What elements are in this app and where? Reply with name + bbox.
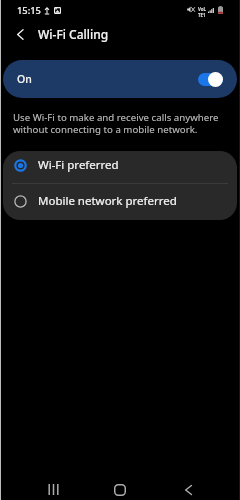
staticText: VoL [198,6,206,12]
button[interactable]: Home [105,479,135,500]
button[interactable]: Mobile network preferred [3,184,237,220]
button[interactable]: On [3,60,237,98]
button[interactable]: Wi-Fi preferred [3,151,237,183]
staticText: 15:15 [17,4,41,17]
staticText: On [17,72,32,86]
staticText: Wi-Fi Calling [38,26,109,42]
staticText: Use Wi-Fi to make and receive calls anyw… [13,111,219,136]
button[interactable]: Back [173,479,203,500]
button[interactable]: Recent apps [38,479,68,500]
staticText: TE1 [198,12,206,18]
staticText: Mobile network preferred [38,193,177,209]
button[interactable]: Navigate up [9,23,31,45]
staticText: Wi-Fi preferred [38,157,119,173]
